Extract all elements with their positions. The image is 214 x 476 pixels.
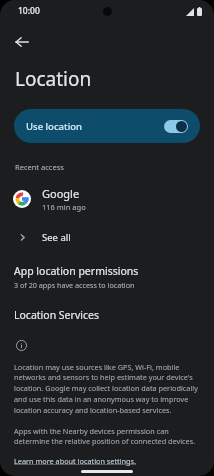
button[interactable]: Use location	[14, 109, 200, 143]
staticText: Location may use sources like GPS, Wi-Fi…	[14, 362, 201, 415]
staticText: Location	[15, 66, 92, 92]
staticText: See all	[42, 231, 71, 244]
button[interactable]: Google	[0, 184, 214, 214]
button[interactable]: Back	[7, 27, 37, 57]
button[interactable]: App location permissions	[0, 262, 214, 292]
button[interactable]: Learn more about location settings.	[14, 456, 137, 466]
staticText: Learn more about location settings.	[14, 456, 137, 466]
staticText: Location Services	[14, 308, 99, 322]
button[interactable]: See all	[0, 225, 214, 249]
staticText: 10:00	[18, 5, 40, 17]
staticText: App location permissions	[14, 264, 139, 278]
staticText: 116 min ago	[42, 202, 86, 212]
staticText: Apps with the Nearby devices permission …	[14, 426, 201, 446]
staticText: Use location	[26, 120, 82, 133]
staticText: 3 of 20 apps have access to location	[14, 280, 135, 290]
button[interactable]: Information	[12, 336, 30, 354]
staticText: Google	[42, 186, 80, 201]
staticText: Recent access	[15, 162, 64, 172]
